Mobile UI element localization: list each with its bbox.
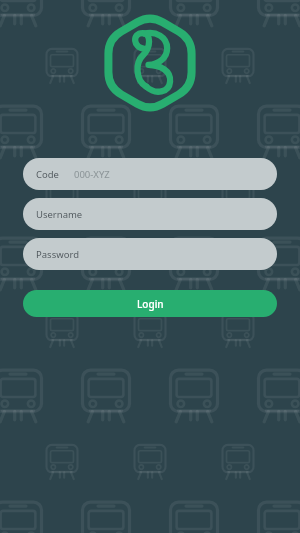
button[interactable]: Code [23,158,277,190]
staticText: Code [36,168,59,181]
staticText: 000-XYZ [74,168,110,181]
staticText: Password [36,248,79,261]
button[interactable]: Username [23,198,277,230]
button[interactable]: Password [23,238,277,270]
staticText: Username [36,208,83,221]
button[interactable]: Login [23,290,277,317]
staticText: Login [137,297,164,311]
